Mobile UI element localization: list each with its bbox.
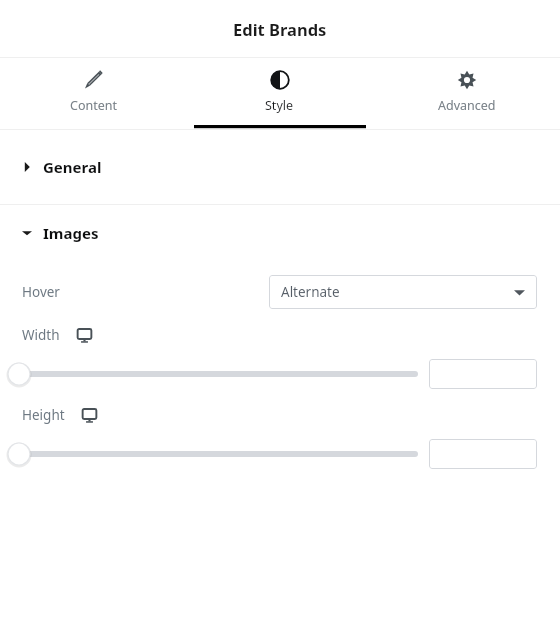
staticText: Content [70, 97, 117, 114]
button[interactable]: Height value [429, 439, 537, 469]
staticText: Images [43, 223, 99, 243]
staticText: Edit Brands [233, 18, 327, 40]
button[interactable]: Desktop device [79, 405, 99, 425]
button[interactable]: Content [0, 58, 186, 129]
button[interactable]: Width slider [8, 359, 415, 389]
button[interactable]: Width value [429, 359, 537, 389]
staticText: Style [265, 97, 294, 114]
staticText: Alternate [281, 283, 340, 301]
button[interactable]: Images [0, 205, 560, 261]
button[interactable]: Height slider [8, 439, 415, 469]
button[interactable]: Style [186, 58, 373, 129]
staticText: Height [22, 406, 65, 424]
button[interactable]: General [0, 130, 560, 204]
button[interactable]: Desktop device [74, 325, 94, 345]
staticText: Hover [22, 283, 60, 301]
button[interactable]: Advanced [373, 58, 560, 129]
staticText: Width [22, 326, 60, 344]
button[interactable]: Alternate [269, 275, 537, 309]
staticText: General [43, 157, 102, 177]
staticText: Advanced [438, 97, 496, 114]
